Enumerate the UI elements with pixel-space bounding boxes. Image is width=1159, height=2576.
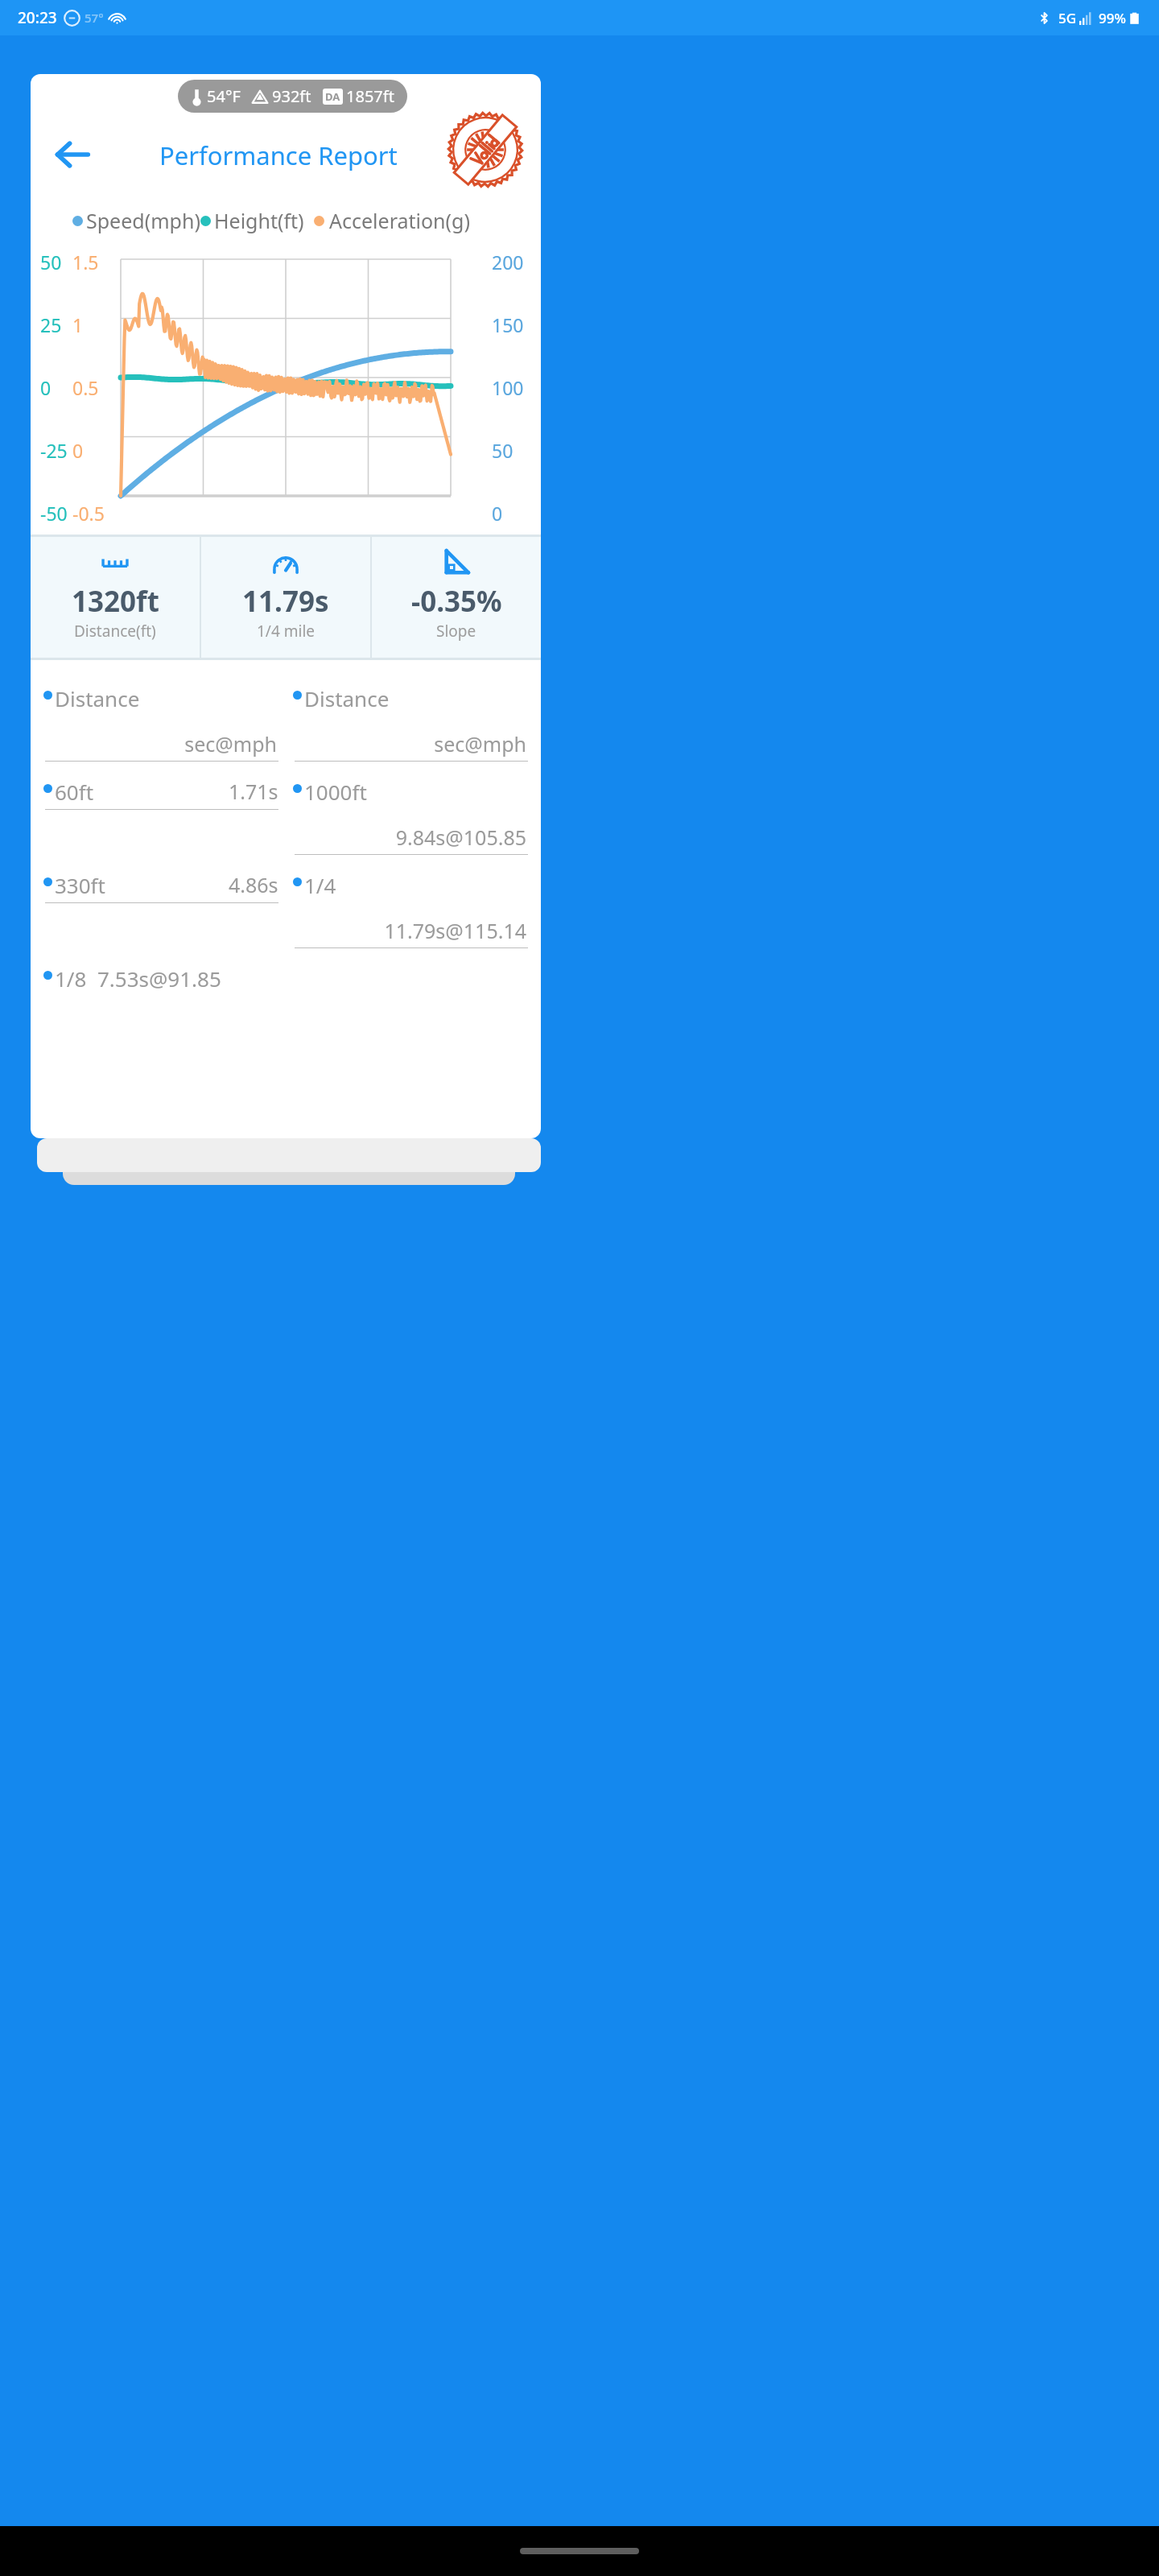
staticText: 60ft (55, 778, 94, 806)
staticText: 11.79s (242, 582, 329, 621)
staticText: 150 (492, 312, 524, 337)
staticText: 25 (40, 312, 62, 337)
button[interactable]: -0.35% (372, 537, 541, 658)
button[interactable]: 1320ft (31, 537, 200, 658)
staticText: 0 (492, 501, 503, 526)
staticText: 4.86s (229, 871, 278, 898)
button[interactable]: 54°F (178, 80, 407, 113)
staticText: 1857ft (346, 85, 394, 107)
staticText: 932ft (272, 85, 311, 107)
staticText: 1/4 mile (257, 621, 316, 642)
staticText: -50 (40, 501, 68, 526)
button[interactable]: 11.79s (201, 537, 370, 658)
staticText: DA (325, 89, 340, 104)
staticText: 1/4 (304, 871, 336, 899)
button[interactable]: 330ft (43, 871, 278, 903)
staticText: 99% (1099, 9, 1126, 27)
staticText: 11.79s@115.14 (293, 917, 526, 944)
staticText: Height(ft) (214, 207, 304, 234)
button[interactable]: 1/4 (293, 871, 528, 948)
staticText: Speed(mph) (86, 207, 200, 234)
staticText: 1320ft (72, 582, 159, 621)
staticText: 1/8 7.53s@91.85 (55, 964, 221, 993)
button[interactable]: 60ft (43, 778, 278, 810)
staticText: 1.5 (72, 250, 99, 275)
staticText: 1000ft (304, 778, 367, 806)
staticText: 50 (492, 438, 514, 463)
staticText: 50 (40, 250, 62, 275)
staticText: 1 (72, 312, 84, 337)
button[interactable]: 1/8 7.53s@91.85 (43, 964, 286, 993)
staticText: Slope (436, 621, 476, 642)
staticText: 20:23 (18, 7, 57, 28)
staticText: Performance Report (159, 138, 398, 172)
staticText: 57° (85, 10, 104, 26)
staticText: 200 (492, 250, 524, 275)
button[interactable]: Distance (43, 684, 278, 762)
staticText: 9.84s@105.85 (293, 824, 526, 851)
staticText: -0.5 (72, 501, 105, 526)
staticText: -25 (40, 438, 68, 463)
staticText: Distance(ft) (74, 621, 156, 642)
staticText: sec@mph (43, 730, 277, 758)
staticText: 0 (72, 438, 84, 463)
staticText: 330ft (55, 871, 105, 899)
staticText: 5G (1058, 9, 1077, 27)
staticText: Acceleration(g) (329, 207, 470, 234)
staticText: Distance (55, 684, 140, 712)
staticText: Distance (304, 684, 390, 712)
staticText: sec@mph (293, 730, 526, 758)
button[interactable]: Back (45, 127, 100, 182)
staticText: 0.5 (72, 375, 99, 400)
staticText: 1.71s (229, 778, 278, 805)
staticText: 0 (40, 375, 52, 400)
staticText: 100 (492, 375, 524, 400)
staticText: 54°F (207, 85, 241, 107)
staticText: -0.35% (411, 582, 502, 621)
button[interactable]: Distance (293, 684, 528, 762)
button[interactable]: 1000ft (293, 778, 528, 855)
